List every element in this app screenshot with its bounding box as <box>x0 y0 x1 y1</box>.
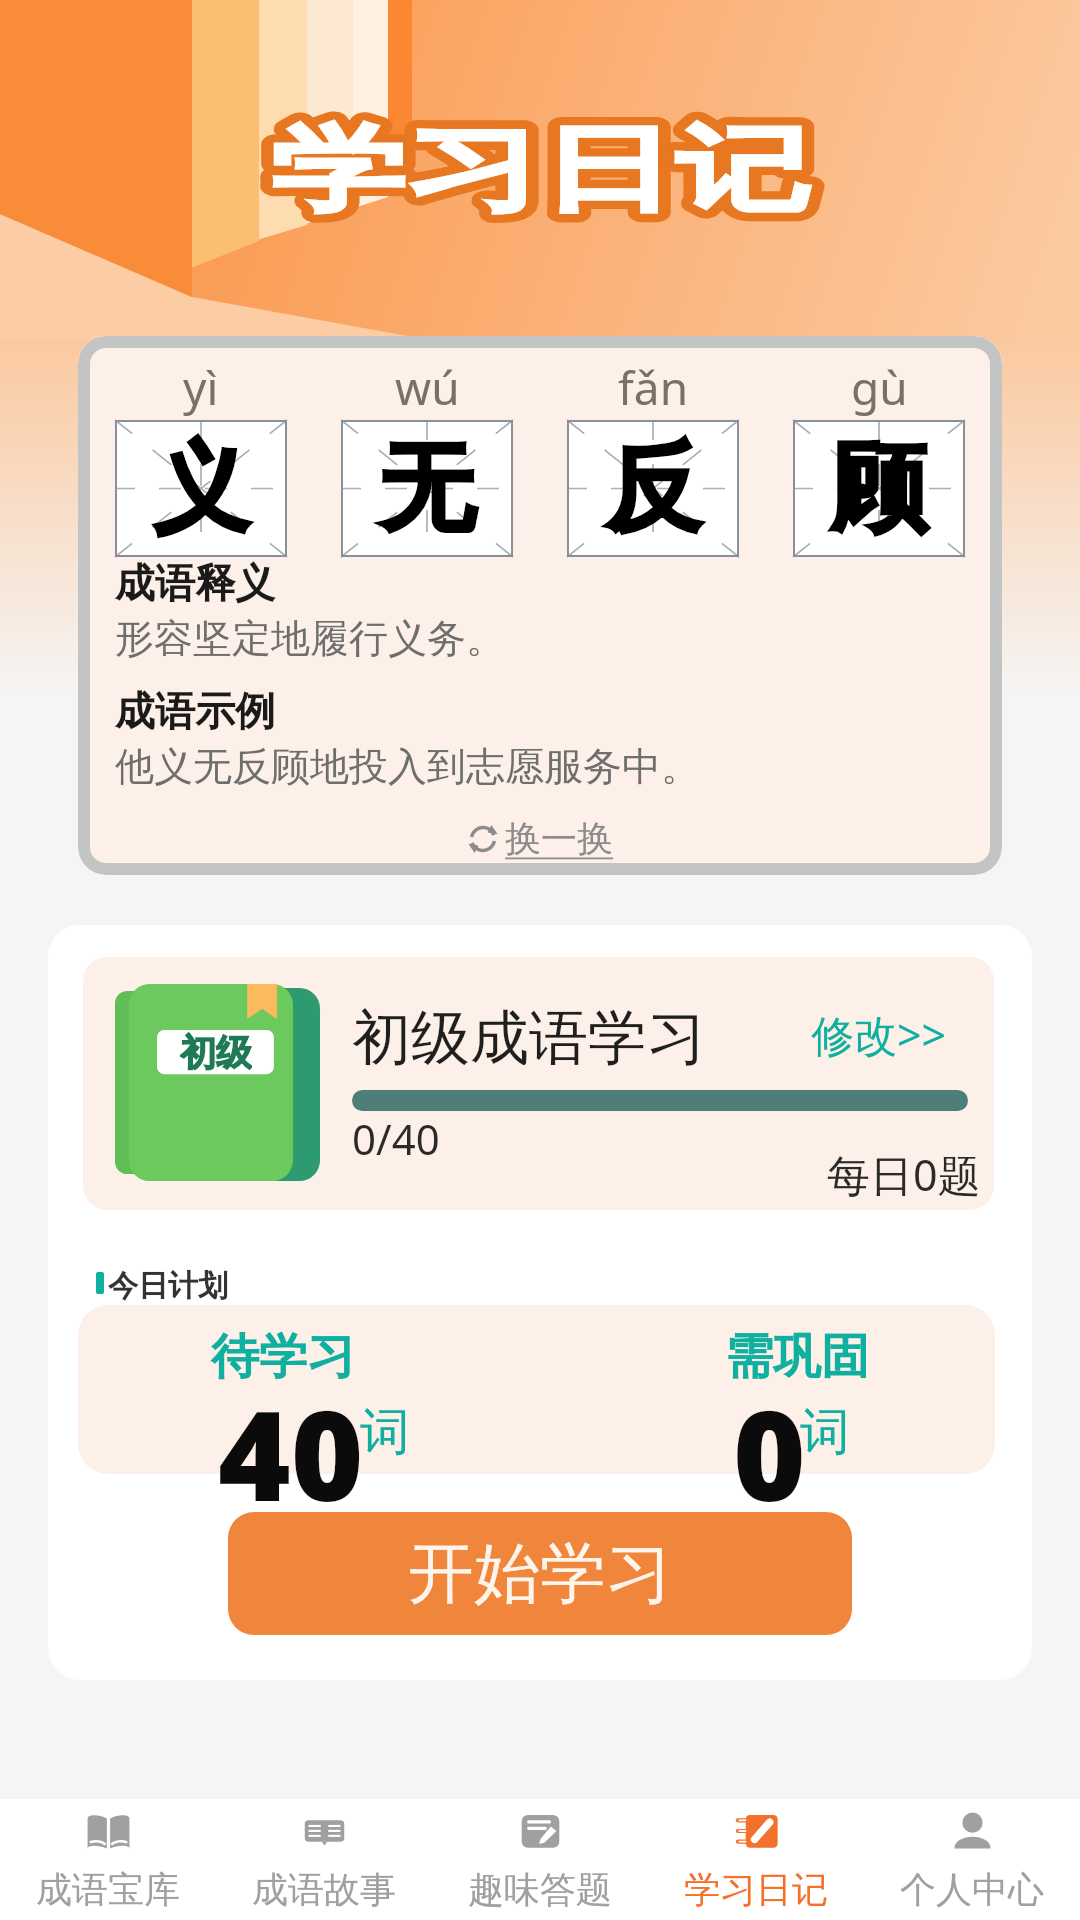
staticText: 成语示例 <box>115 686 275 736</box>
staticText: wú <box>395 356 460 419</box>
staticText: 义 <box>153 429 249 550</box>
staticText: 初级 <box>180 1030 252 1074</box>
staticText: fǎn <box>618 356 689 419</box>
button[interactable]: 初级 <box>83 957 994 1210</box>
staticText: 成语故事 <box>252 1867 396 1912</box>
button[interactable]: 个人中心 <box>864 1799 1080 1920</box>
staticText: 反 <box>605 429 701 550</box>
staticText: 开始学习 <box>408 1532 672 1615</box>
staticText: 换一换 <box>505 816 613 861</box>
staticText: 趣味答题 <box>468 1867 612 1912</box>
staticText: 40 <box>218 1368 364 1537</box>
button[interactable]: 成语故事 <box>216 1799 432 1920</box>
button[interactable]: 趣味答题 <box>432 1799 648 1920</box>
staticText: 成语释义 <box>115 558 275 608</box>
staticText: 学习日记 <box>271 112 811 228</box>
staticText: 需巩固 <box>725 1327 869 1387</box>
staticText: 他义无反顾地投入到志愿服务中。 <box>115 742 700 791</box>
staticText: yì <box>183 356 219 419</box>
staticText: 无 <box>379 429 475 550</box>
staticText: 学习日记 <box>684 1867 828 1912</box>
staticText: 顾 <box>831 429 927 550</box>
staticText: 词 <box>360 1401 410 1464</box>
staticText: 每日0题 <box>827 1145 981 1204</box>
staticText: 初级成语学习 <box>352 1001 706 1075</box>
staticText: 今日计划 <box>108 1267 228 1305</box>
staticText: 词 <box>800 1401 850 1464</box>
button[interactable]: 学习日记 <box>648 1799 864 1920</box>
staticText: 成语宝库 <box>36 1867 180 1912</box>
button[interactable]: 修改>> <box>811 1005 947 1064</box>
staticText: 个人中心 <box>900 1867 1044 1912</box>
staticText: 学习日记 <box>271 112 811 228</box>
button[interactable]: 开始学习 <box>228 1512 852 1635</box>
staticText: 0/40 <box>352 1110 440 1167</box>
other: 刷新 <box>467 823 499 855</box>
staticText: 待学习 <box>211 1327 355 1387</box>
button[interactable]: 成语宝库 <box>0 1799 216 1920</box>
button[interactable]: 刷新 <box>459 810 621 867</box>
staticText: gù <box>851 356 908 419</box>
staticText: 0 <box>733 1368 806 1537</box>
staticText: 形容坚定地履行义务。 <box>115 614 505 663</box>
